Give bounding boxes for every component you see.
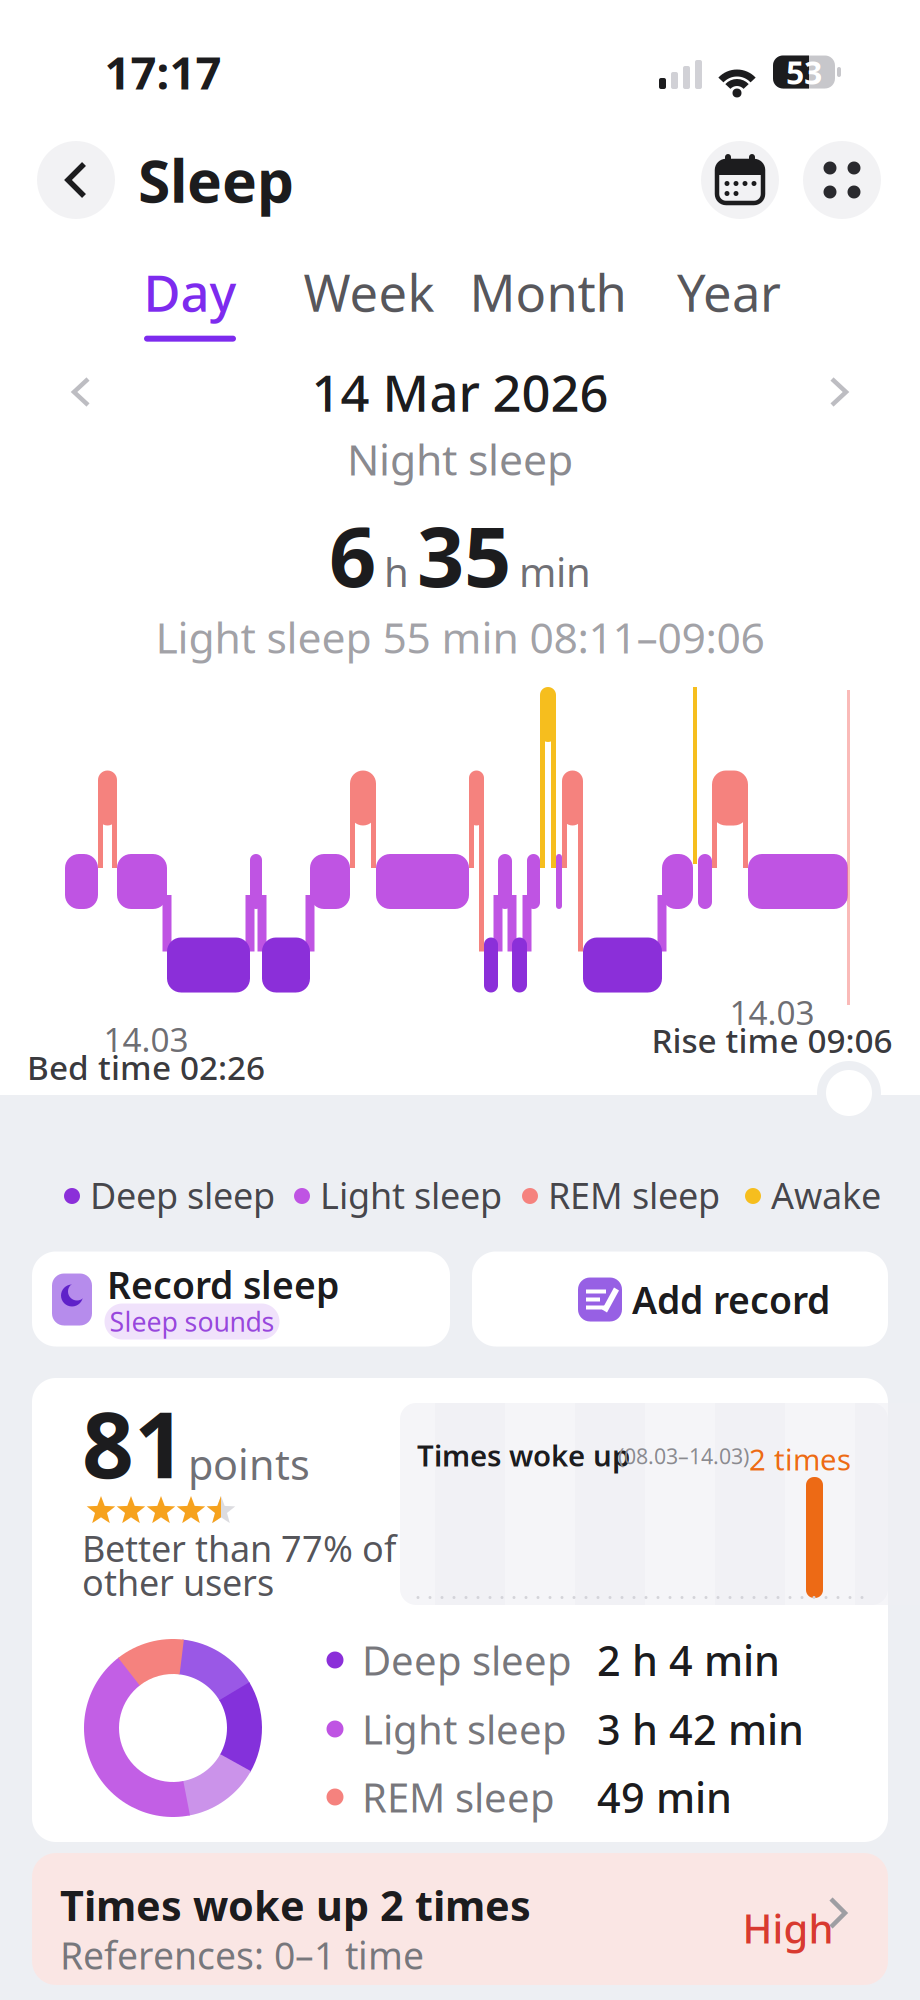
staticText: Awake [771,1171,881,1219]
staticText: Times woke up 2 times [60,1878,531,1932]
staticText: Month [469,258,626,326]
staticText: Week [303,258,434,326]
staticText: Better than 77% of [82,1524,396,1572]
staticText: Deep sleep [90,1171,275,1219]
staticText: High [742,1901,833,1954]
staticText: Sleep sounds [109,1304,274,1339]
staticText: Light sleep [362,1702,567,1755]
staticText: Times woke up [417,1435,630,1474]
button[interactable]: Previous day [66,377,96,407]
staticText: points [188,1437,310,1491]
staticText: 35 [417,500,511,610]
button[interactable]: Times woke up 2 times [32,1853,888,1985]
staticText: (08.03–14.03) [618,1442,749,1470]
button[interactable]: Year [677,258,781,326]
staticText: 2 h 4 min [597,1633,780,1687]
staticText: other users [82,1558,274,1606]
staticText: Deep sleep [362,1633,572,1686]
staticText: Bed time 02:26 [27,1045,265,1089]
button[interactable]: Calendar [701,141,779,219]
staticText: 53 [786,51,822,93]
staticText: 14.03 [103,1017,188,1061]
staticText: Rise time 09:06 [651,1018,892,1062]
button[interactable]: Day [143,258,236,342]
staticText: 6 [329,500,376,610]
staticText: REM sleep [548,1171,720,1219]
staticText: min [519,545,591,598]
staticText: REM sleep [362,1770,555,1823]
staticText: 81 [82,1383,186,1503]
button[interactable]: More [803,141,881,219]
staticText: 14.03 [729,990,814,1034]
button[interactable]: Add record [472,1251,888,1346]
staticText: Light sleep [320,1171,502,1219]
staticText: 17:17 [104,42,221,102]
button[interactable]: Next day [824,377,854,407]
staticText: Sleep [138,141,294,219]
button[interactable]: Week [303,258,434,326]
staticText: Add record [632,1275,830,1324]
staticText: Year [677,258,781,326]
button[interactable]: Month [469,258,626,326]
staticText: Record sleep [107,1260,339,1309]
staticText: Night sleep [347,431,573,487]
staticText: 49 min [597,1770,732,1824]
staticText: 2 times [749,1439,851,1478]
button[interactable]: Back [37,141,115,219]
staticText: Day [143,258,236,326]
staticText: Light sleep 55 min 08:11–09:06 [155,609,764,665]
button[interactable]: Record sleep [32,1251,450,1346]
staticText: h [384,545,409,598]
staticText: 14 Mar 2026 [311,358,608,426]
staticText: 3 h 42 min [597,1702,804,1756]
staticText: References: 0–1 time [60,1930,424,1980]
